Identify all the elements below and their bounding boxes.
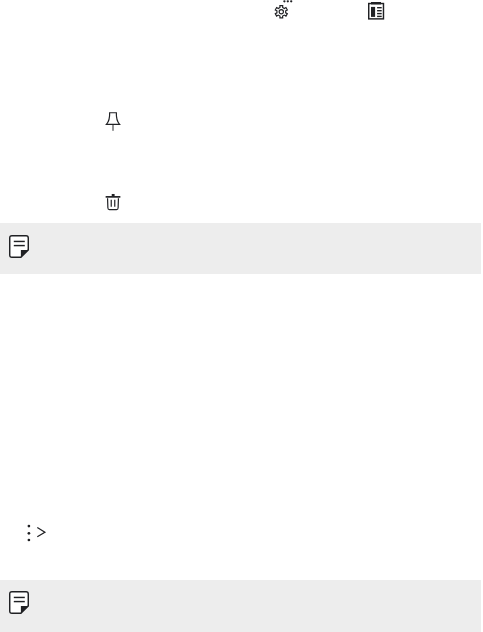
button[interactable]: Pin	[106, 112, 120, 131]
button[interactable]: Note	[0, 223, 481, 274]
button[interactable]: Settings	[274, 0, 296, 20]
button[interactable]: Note	[0, 580, 481, 632]
button[interactable]: Article	[367, 1, 385, 20]
button[interactable]: More options	[24, 520, 48, 542]
button[interactable]: Delete	[105, 193, 121, 211]
